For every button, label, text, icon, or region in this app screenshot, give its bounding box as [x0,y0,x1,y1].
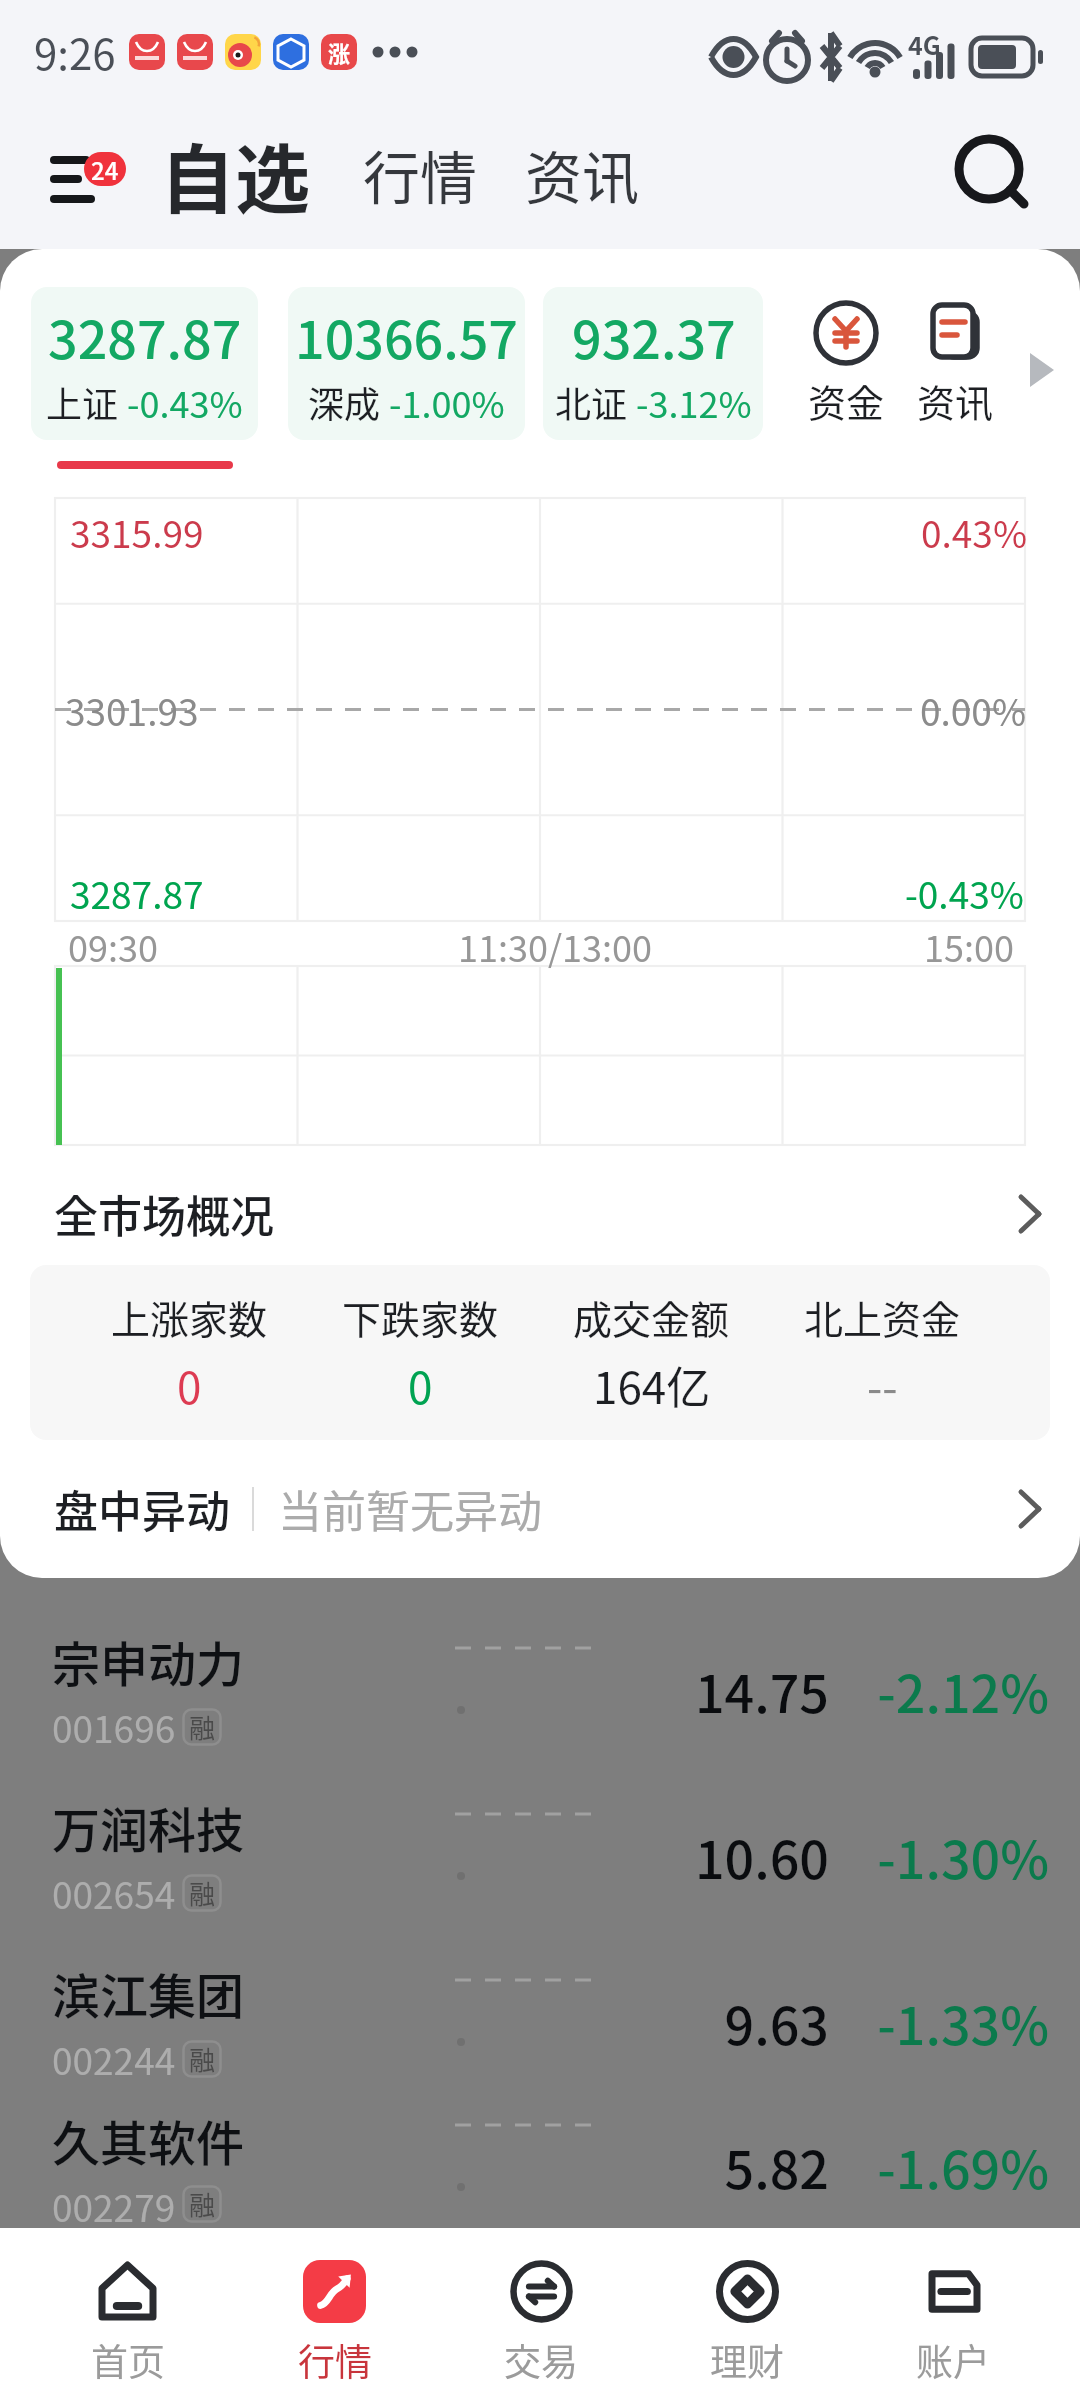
staticText: 5.82 [654,2129,829,2204]
button[interactable]: 宗申动力 [0,1607,1080,1773]
staticText: -1.69% [864,2129,1049,2204]
staticText: -2.12% [864,1653,1049,1728]
button[interactable]: Menu [50,124,130,224]
staticText: 自选 [160,120,311,229]
staticText: 融 [189,1874,216,1912]
staticText: 164亿 [593,1353,711,1417]
staticText: 行情 [363,133,477,216]
staticText: 14.75 [654,1653,829,1728]
staticText: 宗申动力 [52,1626,245,1696]
staticText: 资金 [808,373,885,428]
staticText: 10.60 [654,1819,829,1894]
button[interactable]: 久其软件 [0,2105,1080,2228]
staticText: 3301.93 [65,683,199,737]
staticText: 资讯 [917,373,994,428]
staticText: -3.12% [636,376,752,428]
staticText: 下跌家数 [342,1289,499,1345]
staticText: 理财 [710,2333,784,2387]
button[interactable]: 首页 [24,2228,231,2400]
button[interactable]: 账户 [850,2228,1056,2400]
button[interactable]: 理财 [644,2228,850,2400]
button[interactable]: 资金 [798,287,894,428]
staticText: 0 [177,1353,202,1417]
staticText: 932.37 [572,299,736,374]
staticText: 002279 [52,2179,176,2228]
staticText: -1.33% [864,1985,1049,2060]
staticText: 账户 [916,2333,990,2387]
staticText: -1.00% [389,376,505,428]
button[interactable]: 行情 [231,2228,438,2400]
staticText: 万润科技 [52,1792,245,1862]
staticText: 09:30 [68,920,158,972]
staticText: 资讯 [525,133,639,216]
button[interactable]: 盘中异动 [54,1440,1042,1578]
staticText: 4G [908,26,941,62]
staticText: 3287.87 [70,866,204,920]
staticText: 0.43% [921,505,1027,559]
staticText: 深成 [308,376,381,428]
staticText: 首页 [91,2333,165,2387]
button[interactable]: Search [948,128,1040,220]
button[interactable]: 3287.87 [31,287,258,440]
staticText: 全市场概况 [54,1182,274,1246]
staticText: 北证 [555,376,628,428]
staticText: 盘中异动 [54,1477,230,1541]
staticText: 0 [408,1353,433,1417]
staticText: 9.63 [654,1985,829,2060]
staticText: 10366.57 [295,299,518,374]
button[interactable]: 交易 [438,2228,644,2400]
button[interactable]: 万润科技 [0,1773,1080,1939]
staticText: 0.00% [920,683,1026,737]
staticText: 002244 [52,2032,176,2086]
staticText: 11:30/13:00 [458,920,652,972]
staticText: 3287.87 [48,299,242,374]
staticText: 上证 [46,376,119,428]
staticText: 24 [91,152,119,186]
staticText: 交易 [504,2333,578,2387]
button[interactable]: 资讯 [907,287,1003,428]
staticText: -0.43% [127,376,243,428]
staticText: 融 [189,1708,216,1746]
button[interactable]: 自选 [160,120,311,229]
button[interactable]: 滨江集团 [0,1939,1080,2105]
staticText: 北上资金 [804,1289,961,1345]
button[interactable]: 932.37 [543,287,763,440]
staticText: 001696 [52,1700,176,1754]
staticText: 滨江集团 [52,1958,245,2028]
button[interactable]: 10366.57 [288,287,525,440]
staticText: 融 [189,2185,216,2223]
staticText: -- [867,1353,898,1417]
staticText: 成交金额 [573,1289,730,1345]
staticText: 涨 [328,36,351,68]
button[interactable]: 行情 [363,133,477,216]
button[interactable]: 全市场概况 [54,1162,1042,1265]
staticText: 融 [189,2040,216,2078]
staticText: 3315.99 [70,505,204,559]
button[interactable]: 资讯 [525,133,639,216]
staticText: 上涨家数 [111,1289,268,1345]
staticText: -0.43% [905,866,1024,920]
staticText: 9:26 [34,21,116,82]
staticText: 行情 [298,2333,372,2387]
staticText: -1.30% [864,1819,1049,1894]
staticText: 久其软件 [52,2105,245,2175]
staticText: 15:00 [924,920,1014,972]
staticText: 002654 [52,1866,176,1920]
staticText: 当前暂无异动 [278,1477,542,1541]
